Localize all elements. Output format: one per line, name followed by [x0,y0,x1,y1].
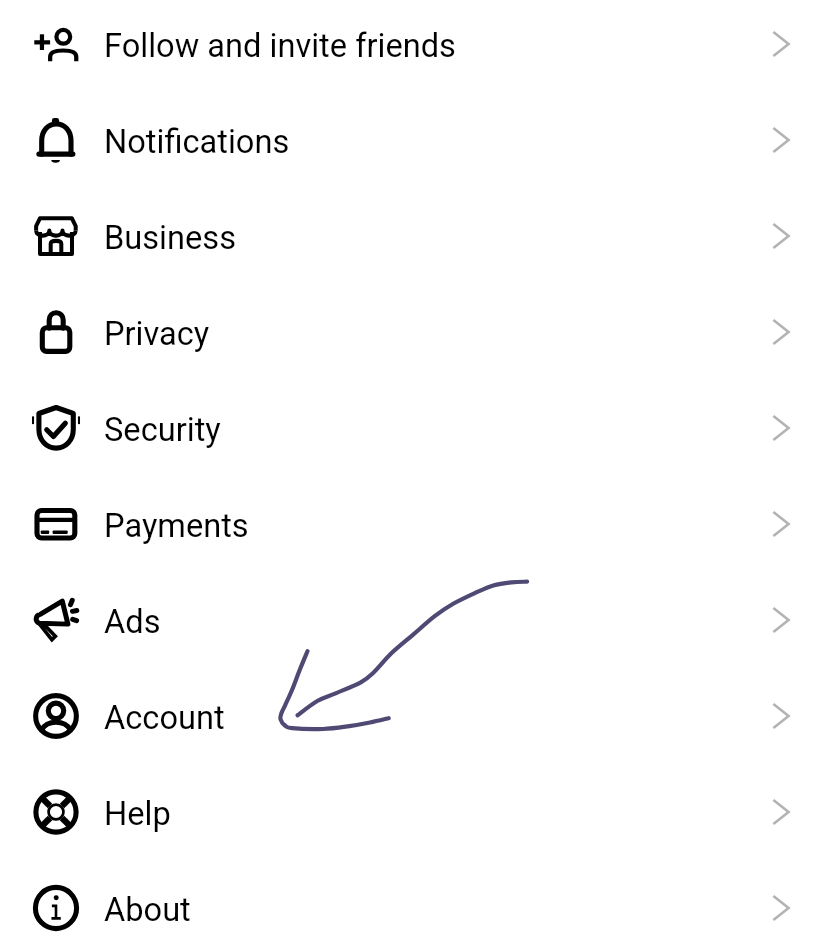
other: Notifications [763,122,799,158]
button[interactable]: Privacy [0,282,828,378]
button[interactable]: About [0,858,828,947]
other: Account [763,698,799,734]
staticText: About [104,891,191,929]
staticText: Follow and invite friends [104,27,456,65]
other: Ads [763,602,799,638]
other: Privacy [763,314,799,350]
button[interactable]: Ads [0,570,828,666]
staticText: Account [104,699,225,737]
other: Follow and invite friends [763,26,799,62]
other: Payments [763,506,799,542]
staticText: Privacy [104,315,210,353]
staticText: Payments [104,507,249,545]
other: Security [763,410,799,446]
staticText: Notifications [104,123,290,161]
button[interactable]: Business [0,186,828,282]
other: About [763,890,799,926]
staticText: Security [104,411,221,449]
staticText: Help [104,795,171,833]
button[interactable]: Follow and invite friends [0,0,828,90]
staticText: Business [104,219,236,257]
button[interactable]: Help [0,762,828,858]
button[interactable]: Notifications [0,90,828,186]
button[interactable]: Payments [0,474,828,570]
staticText: Ads [104,603,161,641]
other: Business [763,218,799,254]
button[interactable]: Account [0,666,828,762]
button[interactable]: Security [0,378,828,474]
other: Help [763,794,799,830]
